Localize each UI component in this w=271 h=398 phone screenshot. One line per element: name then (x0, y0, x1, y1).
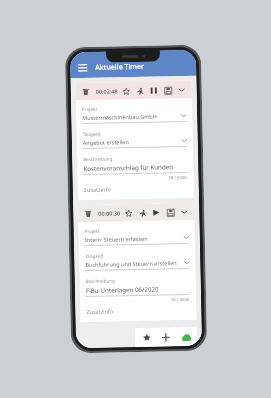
button[interactable]: Pause (148, 84, 160, 97)
button[interactable]: Tätigkeit (83, 129, 187, 149)
staticText: Buchführung und Steuern erstellen (85, 259, 184, 268)
staticText: 38 / 5000 (168, 175, 188, 181)
staticText: Angebot erstellen (83, 137, 182, 146)
button[interactable]: Activity (134, 85, 146, 97)
staticText: Zusatzinfo (84, 185, 111, 193)
staticText: Beschreibung (83, 155, 113, 162)
button[interactable]: Beschreibung (83, 154, 188, 183)
staticText: Intern: Steuern erfassen (85, 234, 184, 243)
button[interactable]: Projekt (82, 104, 186, 124)
button[interactable]: Favorite (122, 207, 134, 219)
button[interactable]: Add timer (158, 329, 174, 345)
staticText: Zusatzinfo (86, 307, 113, 315)
staticText: Aktuelle Timer (95, 62, 144, 73)
button[interactable]: Expand (178, 206, 190, 218)
button[interactable]: Favorite (139, 330, 155, 346)
button[interactable]: Tätigkeit (85, 251, 189, 271)
button[interactable]: Menu (76, 62, 88, 74)
staticText: Beschreibung (86, 277, 116, 284)
button[interactable]: Favorite (120, 85, 132, 97)
staticText: 00:00:30 (98, 209, 120, 217)
button[interactable]: Beschreibung (86, 276, 190, 305)
staticText: Tätigkeit (85, 253, 103, 259)
button[interactable]: Save (162, 84, 174, 96)
staticText: Projekt (82, 106, 97, 112)
button[interactable]: Expand (176, 84, 188, 96)
button[interactable]: Projekt (85, 226, 189, 246)
staticText: FiBu-Unterlagen 06/2020 aufbereiten (86, 284, 190, 294)
staticText: Tätigkeit (83, 131, 101, 137)
button[interactable]: Play (150, 206, 162, 219)
staticText: Mustermaschinenbau GmbH Sanierung Heizu (82, 112, 181, 121)
staticText: Projekt (85, 228, 100, 234)
staticText: 35 / 5000 (171, 297, 190, 303)
button[interactable]: Delete (80, 86, 92, 98)
button[interactable]: Sync to cloud (178, 329, 194, 345)
staticText: Kostenvoranschlag für Kunden erstellen (83, 162, 187, 172)
staticText: 00:02:48 (96, 87, 118, 95)
button[interactable]: Delete (82, 208, 94, 220)
button[interactable]: Activity (136, 207, 148, 219)
button[interactable]: Save (164, 206, 176, 218)
